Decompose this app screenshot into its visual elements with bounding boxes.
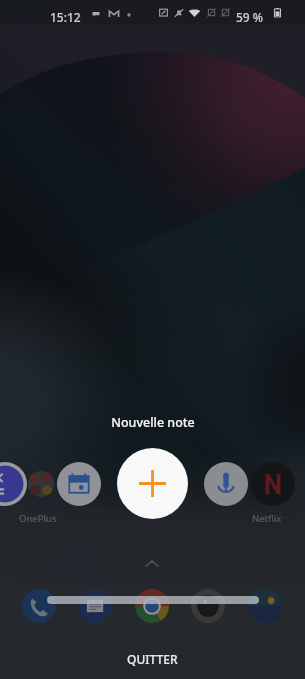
staticText: Netflix [252, 512, 282, 525]
button[interactable]: Nouvelle note [117, 448, 188, 519]
staticText: OnePlus [19, 512, 57, 525]
staticText: 15:12 [50, 9, 81, 25]
staticText: Nouvelle note [111, 414, 195, 431]
button[interactable]: QUITTER [103, 645, 202, 673]
staticText: 59 % [236, 9, 264, 25]
staticText: QUITTER [127, 651, 178, 667]
